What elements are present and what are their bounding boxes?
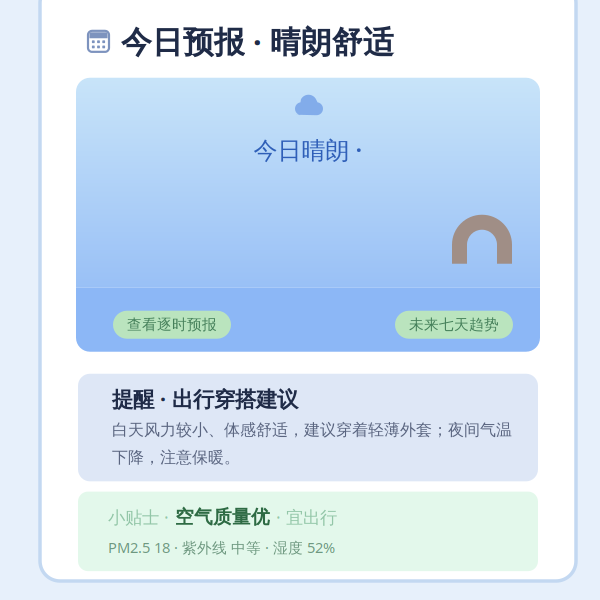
staticText: PM2.5 18 · 紫外线 中等 · 湿度 52% <box>108 538 335 557</box>
staticText: 今日晴朗 · <box>253 134 362 166</box>
button[interactable]: 未来七天趋势 <box>395 311 513 339</box>
staticText: · 宜出行 <box>276 506 337 529</box>
staticText: 未来七天趋势 <box>409 316 499 334</box>
button[interactable]: 查看逐时预报 <box>113 311 231 339</box>
staticText: 小贴士 · <box>108 506 169 529</box>
staticText: 白天风力较小、体感舒适，建议穿着轻薄外套；夜间气温下降，注意保暖。 <box>112 420 512 467</box>
staticText: 提醒 · 出行穿搭建议 <box>112 385 298 413</box>
staticText: 今日预报 · 晴朗舒适 <box>121 21 394 62</box>
staticText: 空气质量优 <box>175 506 270 528</box>
staticText: 查看逐时预报 <box>127 316 217 334</box>
